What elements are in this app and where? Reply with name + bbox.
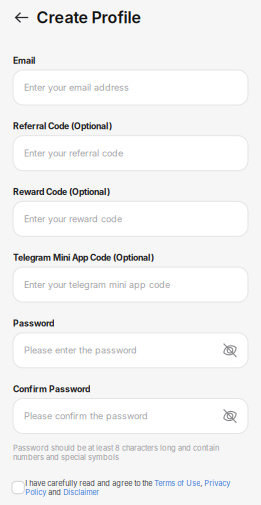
- staticText: Reward Code (Optional): [13, 187, 110, 197]
- button[interactable]: Please enter the password: [13, 333, 248, 368]
- button[interactable]: Enter your email address: [13, 70, 248, 105]
- staticText: Telegram Mini App Code (Optional): [13, 252, 154, 263]
- staticText: Create Profile: [36, 8, 140, 27]
- button[interactable]: I have carefully read and agree to the T…: [0, 479, 235, 497]
- button[interactable]: Back: [15, 6, 28, 28]
- button[interactable]: Please confirm the password: [13, 398, 248, 433]
- button[interactable]: Enter your referral code: [13, 136, 248, 171]
- staticText: Confirm Password: [13, 384, 90, 394]
- staticText: Enter your referral code: [24, 148, 123, 159]
- staticText: Password: [13, 318, 54, 329]
- staticText: Please confirm the password: [24, 410, 148, 421]
- staticText: Please enter the password: [24, 345, 137, 356]
- button[interactable]: Enter your telegram mini app code: [13, 267, 248, 302]
- staticText: Enter your reward code: [24, 213, 122, 224]
- staticText: I have carefully read and agree to the T…: [25, 479, 230, 497]
- staticText: Enter your email address: [24, 82, 129, 93]
- staticText: Password should be at least 8 characters…: [13, 443, 219, 462]
- button[interactable]: Enter your reward code: [13, 201, 248, 236]
- staticText: Enter your telegram mini app code: [24, 279, 170, 290]
- staticText: Referral Code (Optional): [13, 121, 112, 131]
- staticText: Email: [13, 55, 35, 66]
